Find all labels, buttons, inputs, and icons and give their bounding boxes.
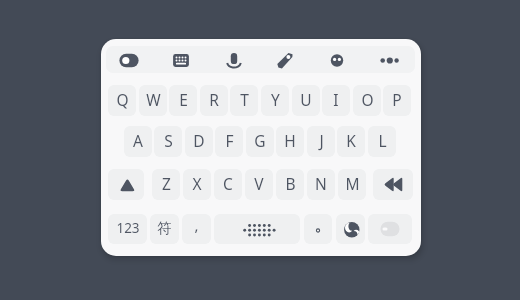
button[interactable]: P <box>383 85 411 116</box>
staticText: V <box>254 173 264 194</box>
button[interactable]: Shift <box>108 169 144 200</box>
staticText: X <box>192 173 202 194</box>
button[interactable]: 符 <box>150 214 179 244</box>
staticText: 123 <box>116 219 140 237</box>
button[interactable]: Period <box>304 214 332 244</box>
staticText: R <box>209 89 219 110</box>
staticText: 符 <box>157 219 172 237</box>
button[interactable]: V <box>245 169 273 200</box>
button[interactable]: Emoji <box>315 47 359 73</box>
button[interactable]: U <box>292 85 320 116</box>
button[interactable]: , <box>182 214 211 244</box>
button[interactable]: C <box>214 169 242 200</box>
button[interactable]: X <box>183 169 211 200</box>
button[interactable]: Handwriting <box>263 47 307 73</box>
button[interactable]: Toggle keyboard <box>368 214 412 244</box>
button[interactable]: L <box>368 126 396 157</box>
button[interactable]: J <box>307 126 335 157</box>
button[interactable]: Q <box>108 85 136 116</box>
staticText: P <box>392 89 402 110</box>
staticText: T <box>240 89 249 110</box>
staticText: I <box>333 89 339 110</box>
staticText: N <box>315 173 327 194</box>
staticText: A <box>133 130 143 151</box>
staticText: Y <box>271 89 280 110</box>
staticText: O <box>361 89 374 110</box>
button[interactable]: I <box>322 85 350 116</box>
staticText: Z <box>162 173 171 194</box>
staticText: , <box>194 215 199 235</box>
button[interactable]: T <box>230 85 258 116</box>
staticText: D <box>193 130 205 151</box>
button[interactable]: Y <box>261 85 289 116</box>
button[interactable]: M <box>338 169 366 200</box>
staticText: K <box>346 130 356 151</box>
staticText: B <box>285 173 296 194</box>
staticText: S <box>164 130 173 151</box>
button[interactable]: S <box>154 126 182 157</box>
staticText: Q <box>116 89 129 110</box>
staticText: H <box>284 130 296 151</box>
button[interactable]: Keyboard <box>159 47 203 73</box>
button[interactable]: Toggle <box>107 47 151 73</box>
staticText: E <box>179 89 188 110</box>
button[interactable]: B <box>276 169 304 200</box>
button[interactable]: Voice input <box>212 47 256 73</box>
staticText: G <box>254 130 266 151</box>
button[interactable]: F <box>215 126 243 157</box>
staticText: F <box>225 130 234 151</box>
button[interactable]: More options <box>368 47 412 73</box>
button[interactable]: K <box>337 126 365 157</box>
button[interactable]: H <box>276 126 304 157</box>
button[interactable]: N <box>307 169 335 200</box>
button[interactable]: Backspace <box>373 169 413 200</box>
button[interactable]: Language <box>336 214 365 244</box>
button[interactable]: 123 <box>108 214 147 244</box>
button[interactable]: E <box>169 85 197 116</box>
staticText: W <box>146 89 161 110</box>
button[interactable]: O <box>353 85 381 116</box>
staticText: U <box>300 89 312 110</box>
button[interactable]: Z <box>152 169 180 200</box>
staticText: C <box>223 173 233 194</box>
staticText: J <box>319 130 324 151</box>
staticText: M <box>345 173 360 194</box>
button[interactable]: D <box>185 126 213 157</box>
button[interactable]: Space <box>214 214 300 244</box>
staticText: L <box>378 130 387 151</box>
button[interactable]: R <box>200 85 228 116</box>
button[interactable]: G <box>246 126 274 157</box>
button[interactable]: A <box>124 126 152 157</box>
button[interactable]: W <box>139 85 167 116</box>
